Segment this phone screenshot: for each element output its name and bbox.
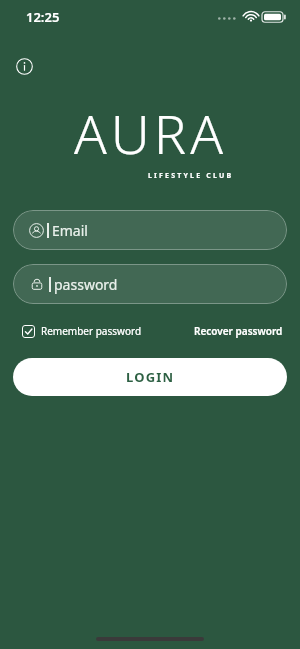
staticText: LOGIN (126, 368, 175, 386)
staticText: Remember password (41, 324, 142, 338)
staticText: password (54, 275, 118, 294)
button[interactable]: LOGIN (13, 358, 287, 396)
staticText: Email (52, 221, 88, 240)
button[interactable]: password (13, 264, 287, 304)
button[interactable]: Recover password (194, 324, 283, 338)
staticText: 12:25 (26, 8, 60, 26)
button[interactable]: Remember password (22, 324, 142, 338)
staticText: AURA (74, 96, 227, 170)
button[interactable]: Email (13, 210, 287, 250)
staticText: LIFESTYLE CLUB (148, 171, 234, 181)
button[interactable]: Information (12, 54, 36, 78)
